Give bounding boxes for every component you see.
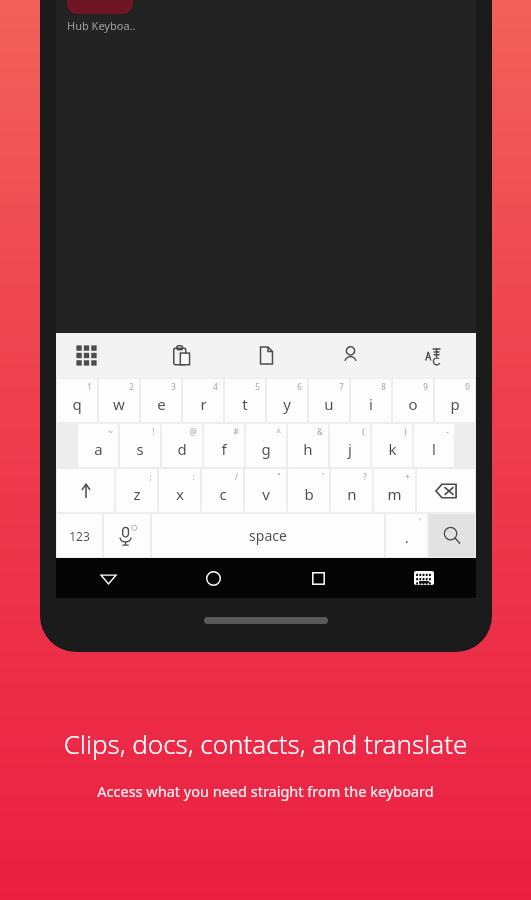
staticText: 123 (69, 528, 90, 544)
staticText: 3 (171, 381, 176, 392)
staticText: 4 (213, 381, 218, 392)
button[interactable]: . (386, 514, 427, 557)
staticText: + (405, 471, 410, 482)
staticText: @ (189, 426, 197, 437)
button[interactable]: Documents (224, 333, 308, 378)
button[interactable]: a (78, 424, 118, 467)
staticText: ? (363, 471, 367, 482)
button[interactable]: space (152, 514, 384, 557)
button[interactable]: n (331, 469, 372, 512)
button[interactable]: Clipboard (140, 333, 224, 378)
staticText: ^ (276, 426, 281, 437)
button[interactable]: q (57, 379, 97, 422)
staticText: 6 (297, 381, 302, 392)
staticText: - (446, 426, 449, 437)
button[interactable] (67, 0, 133, 14)
staticText: b (304, 484, 314, 504)
staticText: u (324, 394, 334, 414)
button[interactable]: s (120, 424, 160, 467)
button[interactable]: 123 (57, 514, 102, 557)
button[interactable]: Back (56, 558, 161, 598)
staticText: g (261, 439, 271, 459)
staticText: f (221, 439, 227, 459)
staticText: i (369, 394, 373, 414)
staticText: r (200, 394, 207, 414)
staticText: 5 (255, 381, 260, 392)
button[interactable]: p (435, 379, 475, 422)
button[interactable]: o (393, 379, 433, 422)
staticText: e (157, 394, 166, 414)
button[interactable]: c (202, 469, 243, 512)
staticText: s (136, 439, 144, 459)
staticText: . (405, 528, 409, 547)
button[interactable]: j (330, 424, 370, 467)
staticText: 8 (381, 381, 386, 392)
staticText: w (113, 394, 125, 414)
staticText: y (283, 394, 291, 414)
staticText: ~ (108, 426, 113, 437)
button[interactable]: w (99, 379, 139, 422)
button[interactable]: Shift (57, 469, 114, 512)
button[interactable]: x (159, 469, 200, 512)
staticText: 2 (129, 381, 134, 392)
staticText: ' (322, 471, 324, 482)
staticText: x (176, 484, 184, 504)
staticText: ( (362, 426, 365, 437)
staticText: Access what you need straight from the k… (18, 781, 513, 801)
staticText: a (94, 439, 103, 459)
staticText: k (388, 439, 397, 459)
button[interactable]: k (372, 424, 412, 467)
button[interactable]: f (204, 424, 244, 467)
staticText: h (303, 439, 313, 459)
button[interactable]: Translate (392, 333, 476, 378)
button[interactable]: r (183, 379, 223, 422)
button[interactable]: g (246, 424, 286, 467)
button[interactable]: e (141, 379, 181, 422)
staticText: c (219, 484, 227, 504)
button[interactable]: m (374, 469, 415, 512)
staticText: 9 (423, 381, 428, 392)
staticText: q (72, 394, 82, 414)
button[interactable]: h (288, 424, 328, 467)
button[interactable]: d (162, 424, 202, 467)
button[interactable]: y (267, 379, 307, 422)
staticText: p (450, 394, 460, 414)
button[interactable]: Recents (266, 558, 371, 598)
staticText: ! (152, 426, 155, 437)
button[interactable]: v (245, 469, 286, 512)
staticText: 1 (87, 381, 92, 392)
staticText: t (242, 394, 248, 414)
staticText: & (317, 426, 323, 437)
button[interactable]: Backspace (417, 469, 475, 512)
button[interactable]: Contacts (308, 333, 392, 378)
staticText: # (233, 426, 239, 437)
button[interactable]: Voice input (104, 514, 150, 557)
staticText: / (235, 471, 238, 482)
staticText: ; (149, 471, 152, 482)
staticText: j (348, 439, 352, 459)
staticText: " (277, 471, 281, 482)
button[interactable]: t (225, 379, 265, 422)
button[interactable]: z (116, 469, 157, 512)
button[interactable]: i (351, 379, 391, 422)
staticText: ) (404, 426, 407, 437)
button[interactable]: u (309, 379, 349, 422)
button[interactable]: Switch keyboard (371, 558, 476, 598)
staticText: : (192, 471, 195, 482)
button[interactable]: Search (429, 514, 475, 557)
button[interactable]: b (288, 469, 329, 512)
staticText: 0 (465, 381, 470, 392)
staticText: o (408, 394, 418, 414)
button[interactable]: l (414, 424, 454, 467)
staticText: d (177, 439, 187, 459)
button[interactable]: Symbols (56, 333, 140, 378)
staticText: n (347, 484, 357, 504)
staticText: Hub Keyboa.. (67, 18, 136, 33)
staticText: z (133, 484, 141, 504)
staticText: ' (419, 516, 421, 527)
staticText: 7 (339, 381, 344, 392)
staticText: Clips, docs, contacts, and translate (18, 726, 513, 761)
staticText: v (262, 484, 270, 504)
button[interactable]: Home (161, 558, 266, 598)
staticText: l (432, 439, 436, 459)
